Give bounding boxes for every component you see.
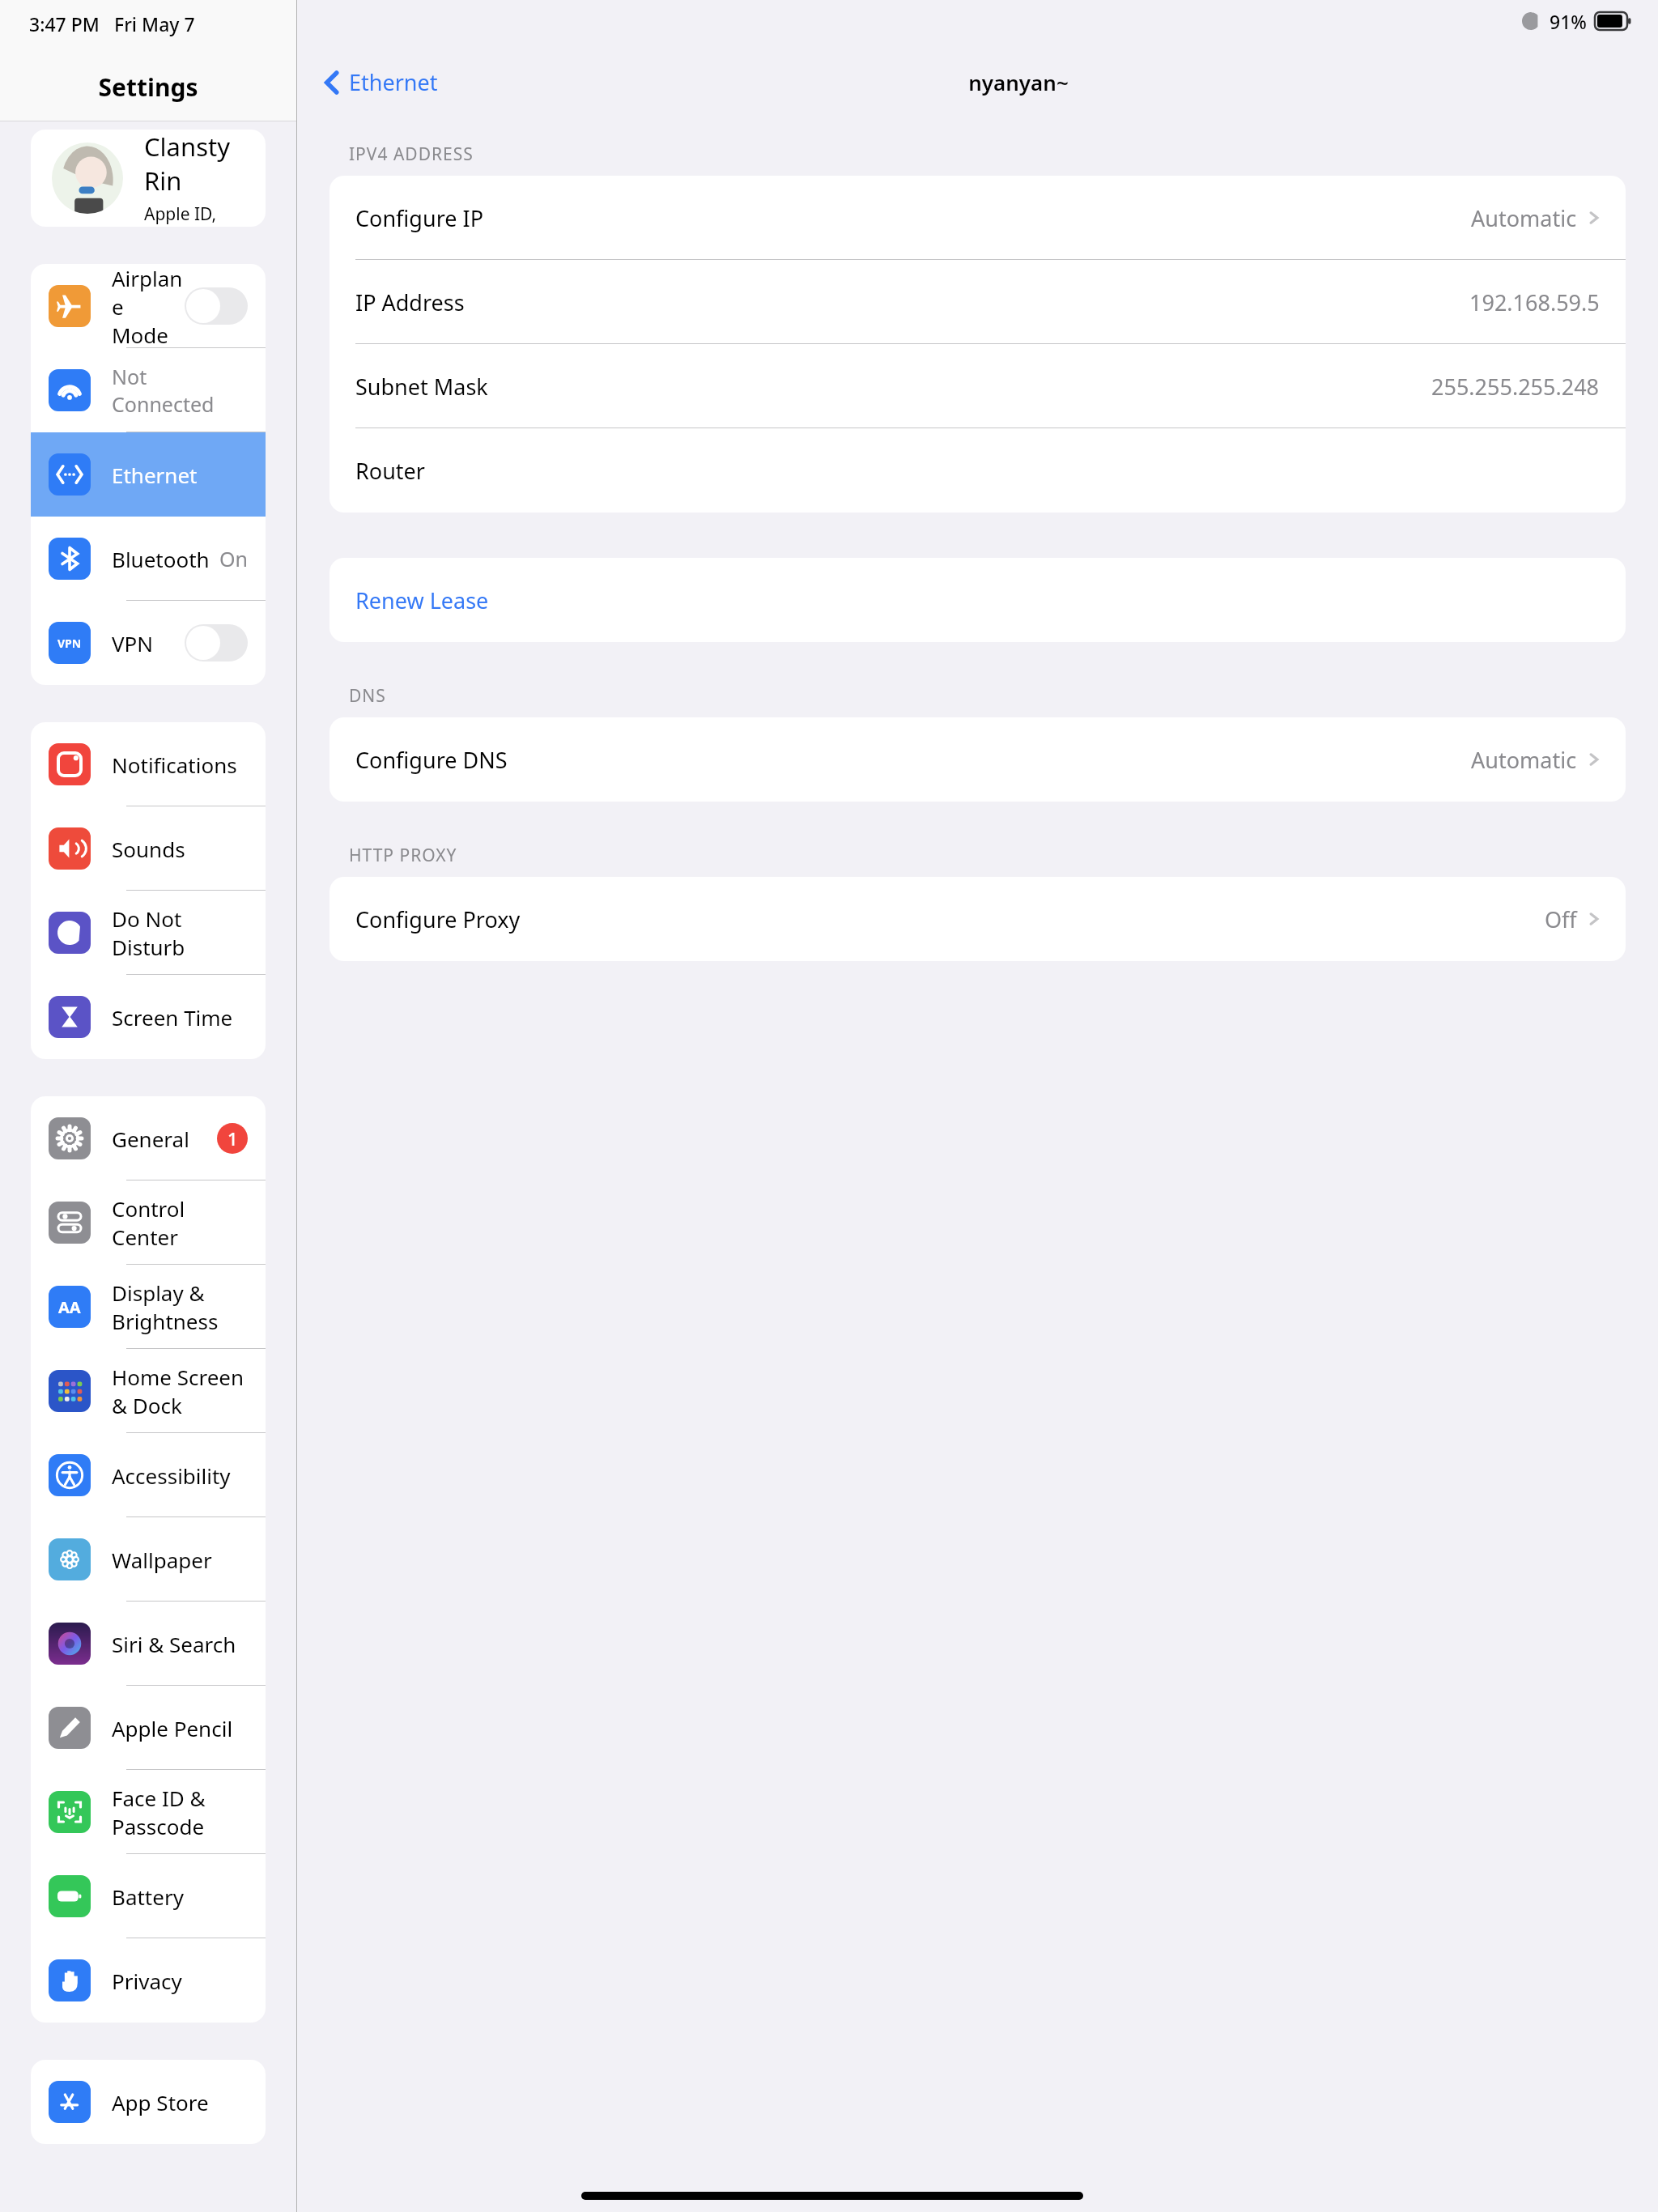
staticText: Siri & Search [112, 1630, 248, 1658]
staticText: Clansty Rin [144, 130, 244, 198]
staticText: Notifications [112, 751, 248, 779]
staticText: 1 [227, 1126, 238, 1151]
staticText: IP Address [355, 287, 1469, 317]
staticText: Battery [112, 1882, 248, 1911]
button[interactable]: Configure Proxy [329, 877, 1626, 961]
button[interactable]: WLAN [31, 348, 266, 432]
staticText: Accessibility [112, 1461, 248, 1490]
button[interactable]: Home Screen & Dock [31, 1349, 266, 1433]
staticText: Wallpaper [112, 1546, 248, 1574]
button[interactable]: Sounds [31, 806, 266, 891]
staticText: Screen Time [112, 1003, 248, 1032]
button[interactable]: AA [31, 1265, 266, 1349]
button[interactable]: Control Center [31, 1180, 266, 1265]
button[interactable]: Accessibility [31, 1433, 266, 1517]
staticText: Sounds [112, 835, 248, 863]
staticText: Home Screen & Dock [112, 1363, 248, 1419]
button[interactable]: Ethernet [318, 61, 444, 104]
staticText: Apple Pencil [112, 1714, 248, 1742]
staticText: Configure IP [355, 203, 1471, 233]
staticText: Settings [0, 70, 296, 104]
staticText: 192.168.59.5 [1469, 287, 1600, 317]
staticText: Renew Lease [355, 585, 489, 615]
button[interactable]: Face ID & Passcode [31, 1770, 266, 1854]
button[interactable]: Configure IP [329, 176, 1626, 260]
button[interactable]: Screen Time [31, 975, 266, 1059]
staticText: Automatic [1471, 203, 1577, 233]
staticText: AA [58, 1296, 81, 1318]
staticText: Privacy [112, 1967, 248, 1995]
staticText: DNS [349, 684, 386, 708]
staticText: General [112, 1125, 217, 1153]
staticText: Router [355, 456, 1600, 486]
staticText: Apple ID, iCloud, Media & Purchases [144, 202, 244, 227]
staticText: Configure Proxy [355, 904, 1545, 934]
staticText: HTTP PROXY [349, 844, 457, 867]
staticText: Subnet Mask [355, 372, 1431, 402]
button[interactable]: Privacy [31, 1938, 266, 2023]
staticText: App Store [112, 2088, 248, 2116]
staticText: On [219, 545, 248, 572]
staticText: IPV4 ADDRESS [349, 143, 474, 166]
staticText: VPN [57, 636, 82, 651]
staticText: Fri May 7 [114, 11, 195, 36]
staticText: Bluetooth [112, 545, 219, 573]
staticText: nyanyan~ [968, 68, 1069, 96]
button[interactable]: General [31, 1096, 266, 1180]
button[interactable]: IP Address [329, 260, 1626, 344]
button[interactable]: Ethernet [31, 432, 266, 517]
button[interactable]: Battery [31, 1854, 266, 1938]
button[interactable]: Configure DNS [329, 717, 1626, 802]
staticText: 3:47 PM [29, 11, 100, 36]
button[interactable]: VPN [31, 601, 266, 685]
staticText: Configure DNS [355, 745, 1471, 775]
staticText: Airplane Mode [112, 264, 185, 348]
staticText: Face ID & Passcode [112, 1784, 248, 1840]
button[interactable]: Notifications [31, 722, 266, 806]
button[interactable]: Router [329, 428, 1626, 513]
button[interactable]: Apple Pencil [31, 1686, 266, 1770]
button[interactable]: Renew Lease [329, 558, 1626, 642]
staticText: Off [1545, 904, 1577, 934]
button[interactable]: Clansty Rin [31, 130, 266, 227]
staticText: Ethernet [349, 67, 438, 97]
staticText: Automatic [1471, 745, 1577, 775]
button[interactable]: App Store [31, 2060, 266, 2144]
button[interactable]: Do Not Disturb [31, 891, 266, 975]
staticText: Ethernet [112, 461, 248, 489]
button[interactable]: Siri & Search [31, 1602, 266, 1686]
button[interactable]: Bluetooth [31, 517, 266, 601]
staticText: 91% [1550, 9, 1587, 34]
staticText: Do Not Disturb [112, 904, 248, 961]
staticText: Display & Brightness [112, 1278, 248, 1335]
staticText: 255.255.255.248 [1431, 372, 1600, 402]
button[interactable]: Wallpaper [31, 1517, 266, 1602]
button[interactable]: Airplane Mode [31, 264, 266, 348]
staticText: VPN [112, 629, 185, 657]
button[interactable]: Subnet Mask [329, 344, 1626, 428]
staticText: Not Connected [112, 363, 248, 418]
staticText: Control Center [112, 1194, 248, 1251]
